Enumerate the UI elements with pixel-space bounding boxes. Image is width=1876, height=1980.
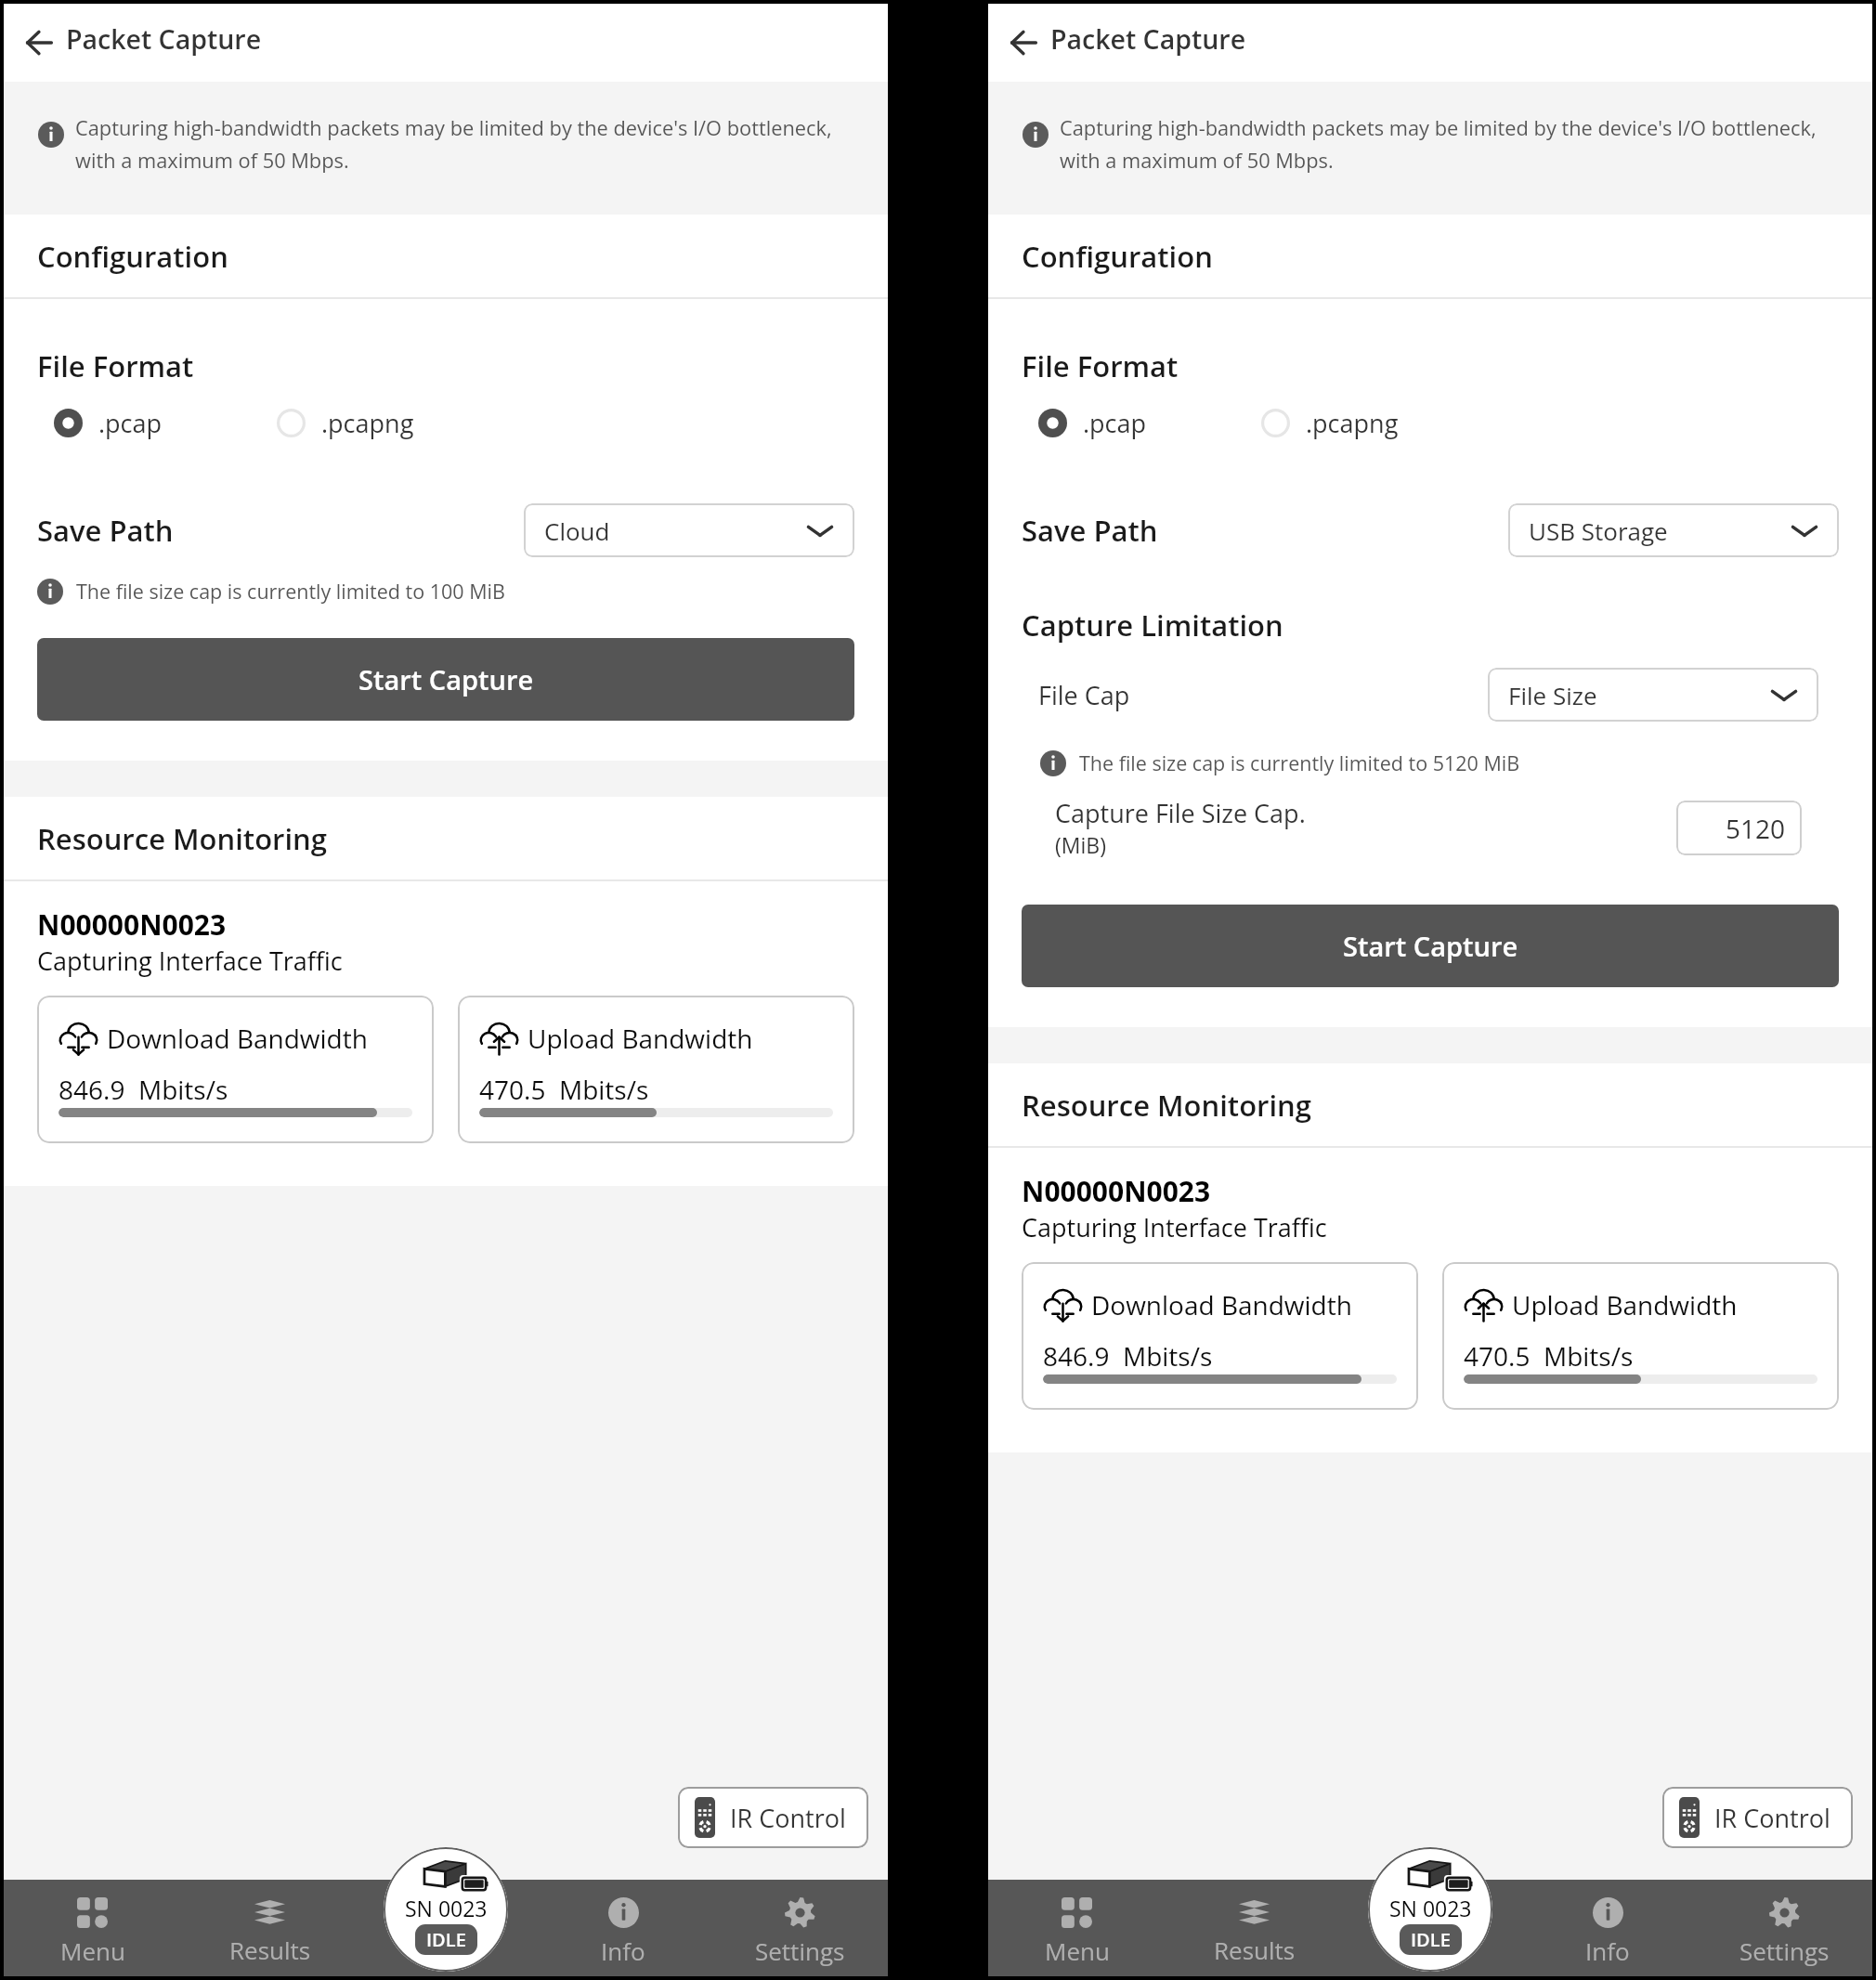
staticText: Settings bbox=[1739, 1934, 1830, 1967]
button[interactable]: Back bbox=[1001, 15, 1046, 71]
staticText: IR Control bbox=[1714, 1801, 1830, 1835]
staticText: Resource Monitoring bbox=[37, 819, 327, 858]
staticText: Capturing high-bandwidth packets may be … bbox=[1060, 114, 1858, 174]
staticText: Capture File Size Cap. bbox=[1055, 796, 1306, 830]
button[interactable]: IR Control bbox=[1662, 1787, 1853, 1848]
staticText: Menu bbox=[1045, 1934, 1110, 1967]
staticText: Packet Capture bbox=[1050, 21, 1246, 58]
staticText: Upload Bandwidth bbox=[528, 1021, 753, 1056]
button[interactable]: .pcap bbox=[1038, 402, 1261, 444]
staticText: .pcapng bbox=[1306, 406, 1399, 440]
staticText: Download Bandwidth bbox=[1091, 1287, 1352, 1322]
button[interactable]: Settings bbox=[1696, 1880, 1872, 1976]
staticText: Upload Bandwidth bbox=[1512, 1287, 1738, 1322]
button[interactable]: Results bbox=[181, 1880, 358, 1976]
button[interactable]: Cloud bbox=[524, 503, 854, 557]
staticText: 5120 bbox=[1726, 811, 1786, 846]
staticText: N00000N0023 bbox=[1022, 1172, 1211, 1210]
staticText: Info bbox=[601, 1934, 645, 1967]
staticText: Configuration bbox=[1022, 237, 1213, 276]
staticText: Configuration bbox=[37, 237, 228, 276]
staticText: Download Bandwidth bbox=[107, 1021, 368, 1056]
button[interactable]: Settings bbox=[711, 1880, 888, 1976]
button[interactable]: .pcapng bbox=[277, 402, 414, 444]
button[interactable]: Upload Bandwidth bbox=[1442, 1262, 1839, 1410]
staticText: Info bbox=[1585, 1934, 1630, 1967]
staticText: Save Path bbox=[1022, 511, 1508, 550]
button[interactable]: Back bbox=[17, 15, 61, 71]
button[interactable]: Start Capture bbox=[37, 638, 854, 721]
staticText: Resource Monitoring bbox=[1022, 1086, 1311, 1125]
staticText: Capturing high-bandwidth packets may be … bbox=[75, 114, 874, 174]
staticText: Settings bbox=[755, 1934, 845, 1967]
button[interactable]: File Size bbox=[1488, 668, 1818, 722]
button[interactable]: Info bbox=[535, 1880, 711, 1976]
button[interactable]: Info bbox=[1519, 1880, 1696, 1976]
staticText: .pcap bbox=[1083, 406, 1147, 440]
staticText: The file size cap is currently limited t… bbox=[1079, 749, 1520, 776]
staticText: .pcapng bbox=[321, 406, 414, 440]
staticText: 846.9 Mbits/s bbox=[59, 1072, 228, 1107]
button[interactable]: IR Control bbox=[678, 1787, 868, 1848]
staticText: IDLE bbox=[1411, 1927, 1451, 1952]
staticText: The file size cap is currently limited t… bbox=[76, 578, 505, 605]
staticText: File Size bbox=[1508, 679, 1770, 711]
staticText: .pcap bbox=[98, 406, 163, 440]
button[interactable]: USB Storage bbox=[1508, 503, 1839, 557]
staticText: Results bbox=[229, 1934, 311, 1966]
staticText: IDLE bbox=[426, 1927, 466, 1952]
button[interactable]: .pcapng bbox=[1261, 402, 1399, 444]
staticText: Start Capture bbox=[1343, 928, 1518, 964]
staticText: Save Path bbox=[37, 511, 524, 550]
staticText: File Format bbox=[37, 346, 194, 385]
staticText: IR Control bbox=[730, 1801, 846, 1835]
staticText: Cloud bbox=[544, 515, 806, 547]
staticText: File Format bbox=[1022, 346, 1179, 385]
staticText: USB Storage bbox=[1529, 515, 1791, 547]
button[interactable]: Device SN 0023, Idle bbox=[1368, 1847, 1492, 1972]
staticText: 470.5 Mbits/s bbox=[1464, 1338, 1634, 1374]
button[interactable]: Download Bandwidth bbox=[1022, 1262, 1418, 1410]
staticText: File Cap bbox=[1038, 678, 1488, 712]
button[interactable]: Upload Bandwidth bbox=[458, 996, 854, 1143]
button[interactable]: Menu bbox=[4, 1880, 181, 1976]
staticText: Capturing Interface Traffic bbox=[37, 944, 343, 978]
button[interactable]: Results bbox=[1166, 1880, 1343, 1976]
staticText: Start Capture bbox=[358, 661, 534, 697]
button[interactable]: .pcap bbox=[54, 402, 277, 444]
staticText: Capture Limitation bbox=[1022, 606, 1283, 645]
button[interactable]: Start Capture bbox=[1022, 905, 1839, 987]
staticText: Packet Capture bbox=[66, 21, 262, 58]
button[interactable]: 5120 bbox=[1676, 801, 1802, 855]
staticText: 846.9 Mbits/s bbox=[1043, 1338, 1213, 1374]
staticText: Capturing Interface Traffic bbox=[1022, 1210, 1327, 1244]
staticText: SN 0023 bbox=[1389, 1894, 1472, 1922]
staticText: Menu bbox=[60, 1934, 125, 1967]
staticText: SN 0023 bbox=[405, 1894, 488, 1922]
staticText: (MiB) bbox=[1055, 830, 1106, 859]
staticText: N00000N0023 bbox=[37, 905, 227, 944]
button[interactable]: Device SN 0023, Idle bbox=[384, 1847, 508, 1972]
staticText: Results bbox=[1214, 1934, 1296, 1966]
staticText: 470.5 Mbits/s bbox=[479, 1072, 649, 1107]
button[interactable]: Menu bbox=[988, 1880, 1166, 1976]
button[interactable]: Download Bandwidth bbox=[37, 996, 434, 1143]
